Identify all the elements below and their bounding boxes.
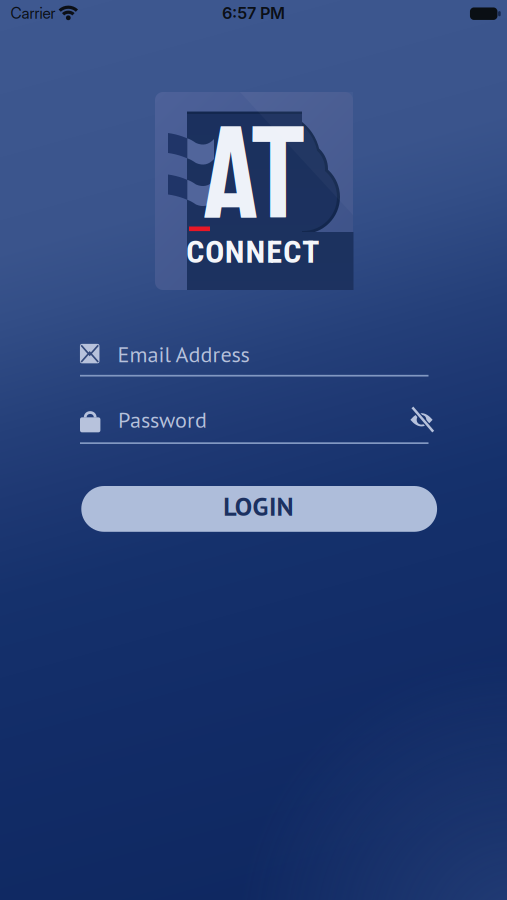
button[interactable]: Email Address [80, 340, 428, 377]
staticText: Carrier [10, 4, 55, 22]
staticText: Email Address [117, 340, 249, 368]
button[interactable]: Password [80, 407, 428, 444]
staticText: AT [203, 93, 305, 258]
staticText: 6:57 PM [222, 3, 285, 23]
staticText: Password [118, 405, 207, 434]
staticText: LOGIN [223, 489, 294, 523]
button[interactable]: Show Password [408, 405, 435, 435]
staticText: CONNECT [186, 233, 320, 271]
button[interactable]: LOGIN [81, 486, 437, 532]
